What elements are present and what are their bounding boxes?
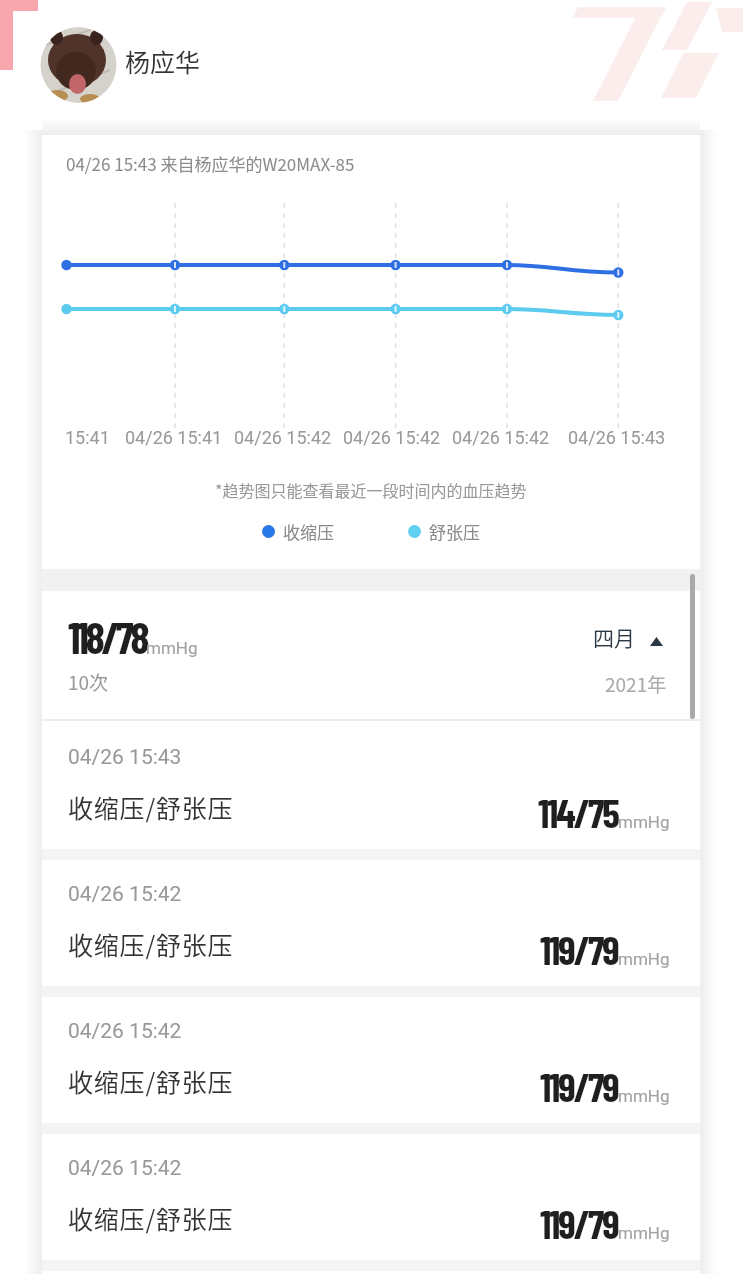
staticText: 04/26 15:42	[68, 1019, 182, 1044]
staticText: 2021年	[605, 670, 667, 698]
staticText: 04/26 15:41	[125, 427, 223, 448]
button[interactable]: 杨应华	[36, 20, 206, 110]
staticText: mmHg	[146, 638, 198, 658]
staticText: 04/26 15:42	[68, 1156, 182, 1181]
staticText: mmHg	[618, 1223, 670, 1243]
staticText: 119/79	[540, 925, 618, 973]
button[interactable]: 04/26 15:43	[42, 721, 700, 849]
staticText: 杨应华	[125, 43, 201, 79]
staticText: 四月	[593, 622, 635, 652]
staticText: 收缩压/舒张压	[68, 1200, 234, 1236]
staticText: 04/26 15:42	[234, 427, 332, 448]
staticText: mmHg	[618, 949, 670, 969]
staticText: 119/79	[540, 1062, 618, 1110]
staticText: 10次	[68, 668, 109, 696]
staticText: 04/26 15:43	[568, 427, 666, 448]
staticText: 04/26 15:42	[68, 882, 182, 907]
button[interactable]: 四月	[560, 620, 680, 656]
staticText: 收缩压/舒张压	[68, 926, 234, 962]
staticText: 15:41	[65, 427, 110, 448]
button[interactable]: 04/26 15:42	[42, 858, 700, 986]
staticText: 04/26 15:43	[68, 745, 182, 770]
button[interactable]: 04/26 15:42	[42, 995, 700, 1123]
button[interactable]: 04/26 15:42	[42, 1132, 700, 1260]
staticText: 收缩压	[283, 519, 334, 544]
staticText: 114/75	[538, 788, 618, 836]
staticText: *趋势图只能查看最近一段时间内的血压趋势	[215, 478, 527, 501]
staticText: mmHg	[618, 1086, 670, 1106]
staticText: 119/79	[540, 1199, 618, 1247]
staticText: 收缩压/舒张压	[68, 789, 234, 825]
staticText: 04/26 15:42	[452, 427, 550, 448]
staticText: 118/78	[68, 610, 146, 663]
staticText: 04/26 15:42	[343, 427, 441, 448]
staticText: 舒张压	[429, 519, 480, 544]
staticText: 04/26 15:43 来自杨应华的W20MAX-85	[66, 151, 355, 176]
staticText: 收缩压/舒张压	[68, 1063, 234, 1099]
staticText: mmHg	[618, 812, 670, 832]
